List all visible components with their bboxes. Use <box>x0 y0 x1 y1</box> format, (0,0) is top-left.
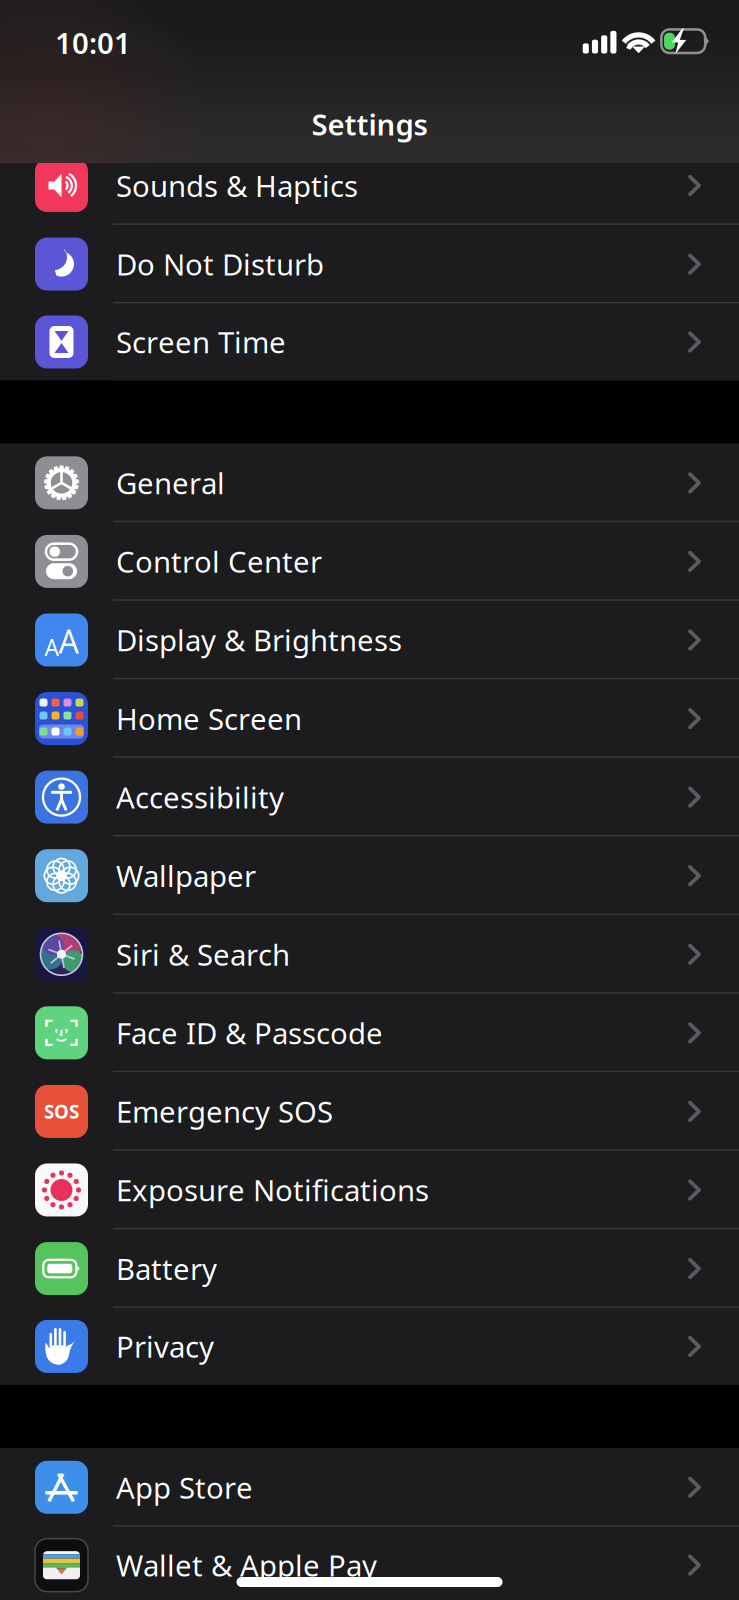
staticText: Wallpaper <box>116 856 256 895</box>
button[interactable]: Sounds & Haptics <box>0 146 739 225</box>
button[interactable]: Exposure Notifications <box>0 1151 739 1229</box>
staticText: Emergency SOS <box>116 1092 333 1131</box>
button[interactable]: Screen Time <box>0 303 739 381</box>
button[interactable]: SOS <box>0 1072 739 1151</box>
staticText: A <box>58 620 78 662</box>
button[interactable]: General <box>0 444 739 522</box>
button[interactable]: Siri & Search <box>0 915 739 994</box>
button[interactable]: Wallpaper <box>0 836 739 915</box>
staticText: Screen Time <box>116 322 286 361</box>
staticText: Exposure Notifications <box>116 1170 429 1209</box>
button[interactable]: Do Not Disturb <box>0 225 739 303</box>
staticText: Face ID & Passcode <box>116 1013 383 1052</box>
staticText: Battery <box>116 1249 217 1288</box>
button[interactable]: Home Screen <box>0 679 739 758</box>
button[interactable]: Control Center <box>0 522 739 601</box>
button[interactable]: Privacy <box>0 1308 739 1385</box>
button[interactable]: App Store <box>0 1448 739 1527</box>
staticText: Display & Brightness <box>116 620 402 659</box>
button[interactable]: A <box>0 601 739 679</box>
staticText: Sounds & Haptics <box>116 166 358 205</box>
staticText: 10:01 <box>55 23 131 62</box>
staticText: Accessibility <box>116 778 284 817</box>
staticText: Control Center <box>116 542 322 581</box>
button[interactable]: Wallet & Apple Pay <box>0 1527 739 1600</box>
staticText: Do Not Disturb <box>116 245 324 284</box>
staticText: General <box>116 463 225 502</box>
staticText: App Store <box>116 1468 253 1507</box>
button[interactable]: Battery <box>0 1229 739 1308</box>
button[interactable]: Face ID & Passcode <box>0 994 739 1072</box>
staticText: Wallet & Apple Pay <box>116 1546 377 1585</box>
staticText: SOS <box>44 1099 79 1124</box>
staticText: A <box>44 632 58 662</box>
staticText: Siri & Search <box>116 935 290 974</box>
staticText: Settings <box>311 104 427 143</box>
staticText: Privacy <box>116 1327 214 1366</box>
staticText: Home Screen <box>116 699 302 738</box>
button[interactable]: Accessibility <box>0 758 739 836</box>
